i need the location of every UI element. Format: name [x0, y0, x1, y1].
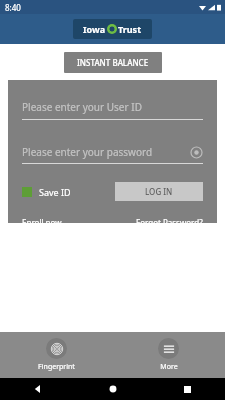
button[interactable]: Recent apps: [150, 378, 225, 400]
button[interactable]: Please enter your password: [22, 145, 203, 164]
staticText: LOG IN: [145, 186, 173, 197]
staticText: INSTANT BALANCE: [77, 57, 149, 68]
staticText: Please enter your User ID: [22, 100, 142, 114]
button[interactable]: Back: [0, 378, 75, 400]
button[interactable]: Enroll now: [22, 217, 62, 223]
staticText: Save ID: [39, 186, 71, 198]
button[interactable]: LOG IN: [115, 182, 203, 201]
button[interactable]: Please enter your User ID: [22, 100, 203, 120]
staticText: Forgot Password?: [136, 217, 203, 223]
staticText: Fingerprint: [38, 362, 75, 372]
button[interactable]: INSTANT BALANCE: [64, 52, 162, 73]
button[interactable]: Fingerprint: [0, 332, 112, 378]
button[interactable]: Iowa: [73, 19, 152, 39]
staticText: 8:40: [5, 2, 21, 13]
button[interactable]: More: [112, 332, 225, 378]
staticText: Trust: [118, 23, 142, 35]
staticText: Enroll now: [22, 217, 62, 223]
button[interactable]: Show password: [189, 145, 203, 159]
staticText: More: [160, 362, 178, 372]
button[interactable]: Forgot Password?: [136, 217, 203, 223]
button[interactable]: Home: [75, 378, 150, 400]
staticText: Please enter your password: [22, 145, 189, 159]
button[interactable]: Save ID: [22, 186, 71, 198]
staticText: Iowa: [83, 23, 106, 35]
